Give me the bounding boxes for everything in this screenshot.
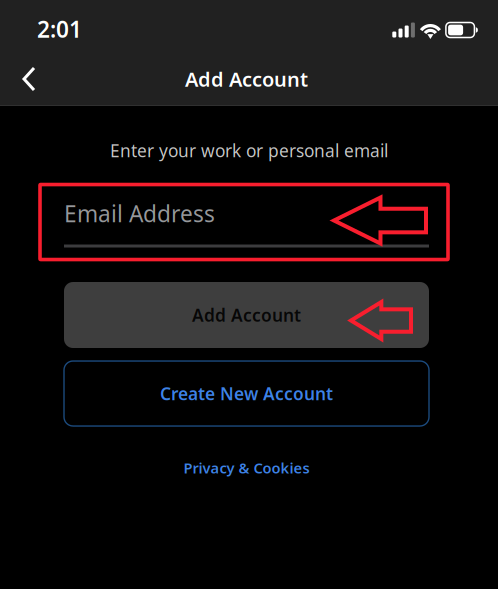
button[interactable]: Create New Account: [64, 361, 429, 426]
staticText: Add Account: [185, 66, 308, 92]
staticText: Email Address: [64, 198, 215, 229]
staticText: Add Account: [192, 303, 301, 326]
button[interactable]: Privacy & Cookies: [169, 449, 323, 486]
staticText: Enter your work or personal email: [110, 139, 388, 162]
staticText: 2:01: [37, 14, 82, 44]
button[interactable]: Email Address: [64, 184, 429, 247]
staticText: Privacy & Cookies: [183, 458, 309, 477]
button[interactable]: Add Account: [64, 282, 429, 348]
staticText: Create New Account: [160, 382, 333, 405]
button[interactable]: Back: [7, 56, 51, 102]
